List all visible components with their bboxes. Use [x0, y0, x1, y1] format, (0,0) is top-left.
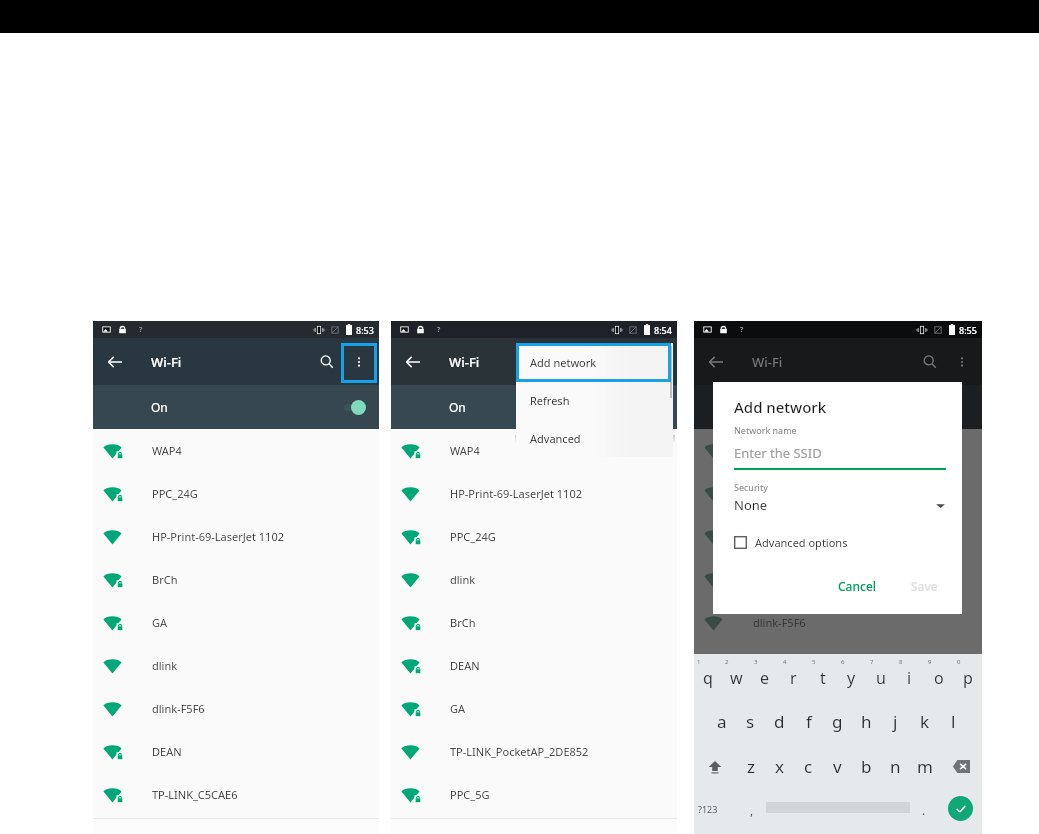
staticText: HP-Print-69-LaserJet 1102: [152, 529, 284, 544]
button[interactable]: n: [881, 744, 910, 789]
staticText: y: [847, 667, 856, 689]
button[interactable]: 5: [808, 654, 837, 699]
staticText: ,: [750, 802, 754, 818]
staticText: j: [893, 710, 898, 733]
button[interactable]: dlink: [391, 558, 677, 601]
staticText: Advanced options: [755, 535, 848, 550]
button[interactable]: PPC_24G: [93, 472, 379, 515]
button[interactable]: Enter: [938, 789, 982, 834]
staticText: w: [730, 667, 743, 689]
button[interactable]: a: [707, 699, 736, 744]
button[interactable]: Search: [915, 342, 945, 382]
staticText: l: [951, 710, 956, 733]
staticText: e: [760, 667, 770, 689]
button[interactable]: g: [823, 699, 852, 744]
staticText: z: [747, 755, 755, 778]
button[interactable]: GA: [391, 687, 677, 730]
button[interactable]: j: [881, 699, 910, 744]
button[interactable]: Back: [398, 342, 428, 382]
button[interactable]: ,: [738, 789, 766, 834]
staticText: dlink: [152, 658, 178, 673]
button[interactable]: 7: [866, 654, 895, 699]
staticText: ?: [437, 325, 441, 335]
staticText: Wi-Fi: [449, 353, 480, 371]
button[interactable]: Advanced options: [734, 535, 848, 550]
staticText: Add network: [530, 355, 597, 370]
button[interactable]: Wi-Fi toggle: [340, 393, 370, 421]
staticText: 7: [870, 658, 874, 666]
button[interactable]: f: [794, 699, 823, 744]
button[interactable]: HP-Print-69-LaserJet 1102: [93, 515, 379, 558]
button[interactable]: DEAN: [93, 730, 379, 773]
button[interactable]: s: [736, 699, 765, 744]
button[interactable]: 6: [837, 654, 866, 699]
staticText: q: [703, 667, 713, 689]
button[interactable]: b: [852, 744, 881, 789]
button[interactable]: 9: [924, 654, 953, 699]
staticText: TP-LINK_C5CAE6: [152, 787, 238, 802]
button[interactable]: TP-LINK_PocketAP_2DE852: [391, 730, 677, 773]
button[interactable]: BrCh: [93, 558, 379, 601]
button[interactable]: 0: [953, 654, 982, 699]
button[interactable]: k: [910, 699, 939, 744]
staticText: f: [806, 710, 812, 733]
button[interactable]: More options: [344, 342, 374, 382]
staticText: ?: [740, 325, 744, 335]
button[interactable]: Back: [100, 342, 130, 382]
button[interactable]: h: [852, 699, 881, 744]
staticText: i: [907, 667, 912, 689]
button[interactable]: 3: [750, 654, 779, 699]
button[interactable]: l: [939, 699, 968, 744]
button[interactable]: GA: [93, 601, 379, 644]
button[interactable]: 4: [779, 654, 808, 699]
staticText: h: [861, 710, 872, 733]
staticText: 1: [697, 658, 701, 666]
staticText: Cancel: [838, 578, 877, 594]
button[interactable]: WAP4: [93, 429, 379, 472]
button[interactable]: 8: [895, 654, 924, 699]
staticText: WAP4: [152, 443, 182, 458]
staticText: m: [917, 755, 933, 778]
staticText: dlink-F5F6: [152, 701, 205, 716]
button[interactable]: v: [823, 744, 852, 789]
button[interactable]: 2: [722, 654, 750, 699]
button[interactable]: x: [765, 744, 794, 789]
button[interactable]: Cancel: [830, 574, 885, 598]
button[interactable]: TP-LINK_C5CAE6: [93, 773, 379, 816]
staticText: 8:54: [654, 324, 672, 336]
staticText: 5: [812, 658, 816, 666]
button[interactable]: z: [736, 744, 765, 789]
button[interactable]: dlink-F5F6: [93, 687, 379, 730]
button[interactable]: Space: [766, 795, 910, 820]
button[interactable]: BrCh: [391, 601, 677, 644]
staticText: a: [717, 710, 727, 733]
staticText: GA: [152, 615, 168, 630]
staticText: On: [151, 399, 168, 415]
button[interactable]: WAP4: [391, 429, 677, 472]
button[interactable]: dlink: [93, 644, 379, 687]
button[interactable]: c: [794, 744, 823, 789]
button[interactable]: HP-Print-69-LaserJet 1102: [391, 472, 677, 515]
button[interactable]: Back: [701, 342, 731, 382]
button[interactable]: Refresh: [516, 381, 673, 419]
button[interactable]: Shift: [694, 744, 736, 789]
button[interactable]: Search: [610, 342, 640, 382]
button[interactable]: d: [765, 699, 794, 744]
button[interactable]: Add network: [516, 343, 673, 381]
staticText: 8:55: [959, 324, 977, 336]
button[interactable]: 1: [694, 654, 722, 699]
button[interactable]: More options: [947, 342, 977, 382]
button[interactable]: Search: [312, 342, 342, 382]
button[interactable]: .: [910, 789, 938, 834]
button[interactable]: m: [910, 744, 939, 789]
button[interactable]: DEAN: [391, 644, 677, 687]
button[interactable]: More options: [642, 342, 672, 382]
button[interactable]: Advanced: [516, 419, 673, 457]
button[interactable]: PPC_5G: [391, 773, 677, 816]
button[interactable]: Backspace: [939, 744, 982, 789]
staticText: TP-LINK_PocketAP_2DE852: [450, 744, 589, 759]
button[interactable]: Save: [903, 574, 946, 598]
button[interactable]: PPC_24G: [391, 515, 677, 558]
button[interactable]: ?123: [694, 789, 738, 834]
